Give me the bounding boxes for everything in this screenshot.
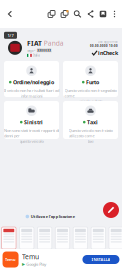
button[interactable]: Sinistri (4, 101, 59, 139)
button[interactable]: Taxi (63, 101, 118, 139)
staticText: FIAT (27, 39, 42, 48)
button[interactable]: INSTALLA (82, 255, 119, 264)
button[interactable]: Altro (109, 0, 120, 28)
button[interactable]: Confronta (45, 0, 58, 28)
button[interactable]: Scrivi al venditore (103, 202, 119, 218)
staticText: questo veicolo (19, 138, 43, 144)
staticText: veicolo rubato (78, 98, 102, 104)
staticText: 1/7 (7, 33, 13, 38)
staticText: XX000XX (37, 49, 51, 52)
staticText: Temu (5, 257, 16, 262)
staticText: Utilizza e l'applicazione (31, 214, 75, 219)
staticText: INSTALLA (91, 257, 110, 262)
staticText: ▶ (22, 262, 25, 266)
button[interactable]: Indietro (1, 0, 19, 28)
staticText: Dati aggiornati (98, 40, 118, 43)
staticText: Questo veicolo non è segnalato come (64, 88, 116, 98)
staticText: inCheck (98, 49, 118, 56)
staticText: Targa (27, 49, 33, 52)
staticText: Sinistri (24, 119, 43, 126)
button[interactable]: Preferiti (97, 0, 109, 28)
button[interactable]: Furto (63, 61, 118, 97)
staticText: Panda (44, 39, 64, 48)
staticText: informazioni (20, 93, 42, 98)
button[interactable]: Salva annuncio (58, 0, 71, 28)
staticText: Non sono stati trovati rapporti di danni… (4, 128, 59, 138)
button[interactable]: Condividi (84, 0, 97, 28)
staticText: taxi (87, 138, 93, 144)
staticText: 00.00.0000 10:00 (90, 44, 118, 48)
button[interactable]: Cerca (71, 0, 84, 28)
staticText: • (34, 49, 35, 52)
staticText: Taxi (87, 119, 98, 126)
staticText: Google Play (26, 262, 46, 267)
staticText: Temu (22, 252, 39, 261)
staticText: Il veicolo non ha risultati fuori ad (4, 88, 59, 93)
staticText: Furto (86, 79, 99, 86)
button[interactable]: Ordine/noleggio (4, 61, 59, 97)
staticText: Questo veicolo non è stato utilizzato co… (68, 128, 112, 138)
staticText: Italia (33, 54, 39, 57)
staticText: Ordine/noleggio (13, 79, 54, 86)
